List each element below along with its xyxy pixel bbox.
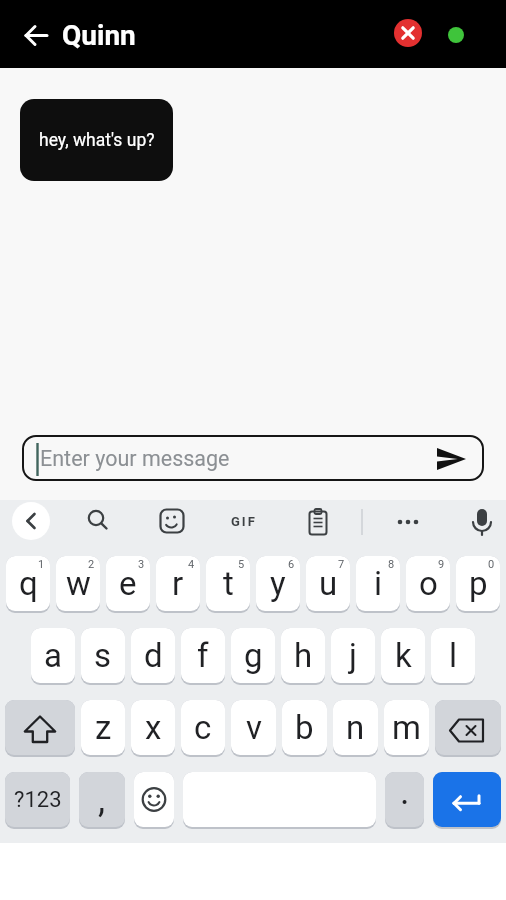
button[interactable]: o: [406, 556, 450, 611]
button[interactable]: k: [381, 628, 425, 683]
button[interactable]: b: [282, 700, 327, 755]
button[interactable]: [394, 19, 422, 47]
staticText: w: [66, 564, 91, 603]
button[interactable]: y: [256, 556, 300, 611]
button[interactable]: [134, 772, 174, 827]
staticText: f: [197, 636, 209, 675]
staticText: GIF: [231, 514, 257, 529]
staticText: 2: [88, 558, 95, 571]
button[interactable]: v: [231, 700, 276, 755]
staticText: 4: [188, 558, 195, 571]
button[interactable]: z: [81, 700, 125, 755]
staticText: j: [349, 636, 357, 675]
staticText: l: [449, 636, 458, 675]
staticText: x: [145, 708, 162, 747]
button[interactable]: q: [6, 556, 50, 611]
button[interactable]: [80, 503, 116, 539]
button[interactable]: [12, 502, 50, 540]
button[interactable]: p: [456, 556, 500, 611]
button[interactable]: g: [231, 628, 275, 683]
staticText: .: [400, 771, 410, 813]
button[interactable]: x: [131, 700, 175, 755]
button[interactable]: Enter your message: [22, 435, 484, 481]
button[interactable]: u: [306, 556, 350, 611]
button[interactable]: [390, 503, 426, 539]
staticText: n: [346, 708, 365, 747]
button[interactable]: j: [331, 628, 375, 683]
staticText: ,: [98, 779, 106, 821]
button[interactable]: [435, 700, 501, 755]
staticText: p: [469, 564, 488, 603]
staticText: Quinn: [62, 19, 136, 52]
staticText: 3: [138, 558, 145, 571]
button[interactable]: [433, 772, 501, 827]
button[interactable]: ,: [79, 772, 125, 827]
staticText: k: [395, 636, 412, 675]
button[interactable]: h: [281, 628, 325, 683]
staticText: e: [119, 564, 137, 603]
staticText: y: [270, 564, 286, 603]
staticText: a: [44, 636, 62, 675]
button[interactable]: [300, 503, 336, 539]
staticText: z: [95, 708, 112, 747]
staticText: ?123: [14, 787, 62, 813]
button[interactable]: [183, 772, 376, 827]
staticText: r: [172, 564, 184, 603]
button[interactable]: c: [181, 700, 225, 755]
button[interactable]: GIF: [222, 503, 266, 539]
staticText: g: [244, 636, 263, 675]
staticText: 9: [438, 558, 445, 571]
button[interactable]: hey, what's up?: [20, 99, 173, 181]
staticText: hey, what's up?: [39, 130, 155, 151]
staticText: h: [294, 636, 313, 675]
button[interactable]: w: [56, 556, 100, 611]
staticText: Enter your message: [40, 446, 230, 471]
staticText: m: [392, 708, 421, 747]
button[interactable]: e: [106, 556, 150, 611]
button[interactable]: n: [333, 700, 378, 755]
button[interactable]: r: [156, 556, 200, 611]
button[interactable]: [464, 502, 500, 538]
button[interactable]: [154, 503, 190, 539]
button[interactable]: .: [385, 772, 424, 827]
staticText: b: [295, 708, 314, 747]
staticText: c: [194, 708, 212, 747]
button[interactable]: t: [206, 556, 250, 611]
staticText: q: [19, 564, 38, 603]
staticText: 6: [288, 558, 295, 571]
button[interactable]: [430, 441, 472, 477]
staticText: s: [94, 636, 112, 675]
button[interactable]: i: [356, 556, 400, 611]
staticText: v: [246, 708, 262, 747]
button[interactable]: a: [31, 628, 75, 683]
button[interactable]: f: [181, 628, 225, 683]
staticText: 7: [338, 558, 345, 571]
button[interactable]: l: [431, 628, 475, 683]
button[interactable]: s: [81, 628, 125, 683]
staticText: i: [374, 564, 383, 603]
staticText: d: [144, 636, 163, 675]
button[interactable]: d: [131, 628, 175, 683]
button[interactable]: m: [384, 700, 429, 755]
staticText: o: [419, 564, 438, 603]
button[interactable]: [5, 700, 75, 755]
button[interactable]: ?123: [5, 772, 70, 827]
staticText: t: [223, 564, 234, 603]
button[interactable]: [14, 22, 58, 48]
staticText: 0: [488, 558, 495, 571]
staticText: 1: [38, 558, 45, 571]
staticText: u: [319, 564, 338, 603]
staticText: 8: [388, 558, 395, 571]
staticText: 5: [238, 558, 245, 571]
